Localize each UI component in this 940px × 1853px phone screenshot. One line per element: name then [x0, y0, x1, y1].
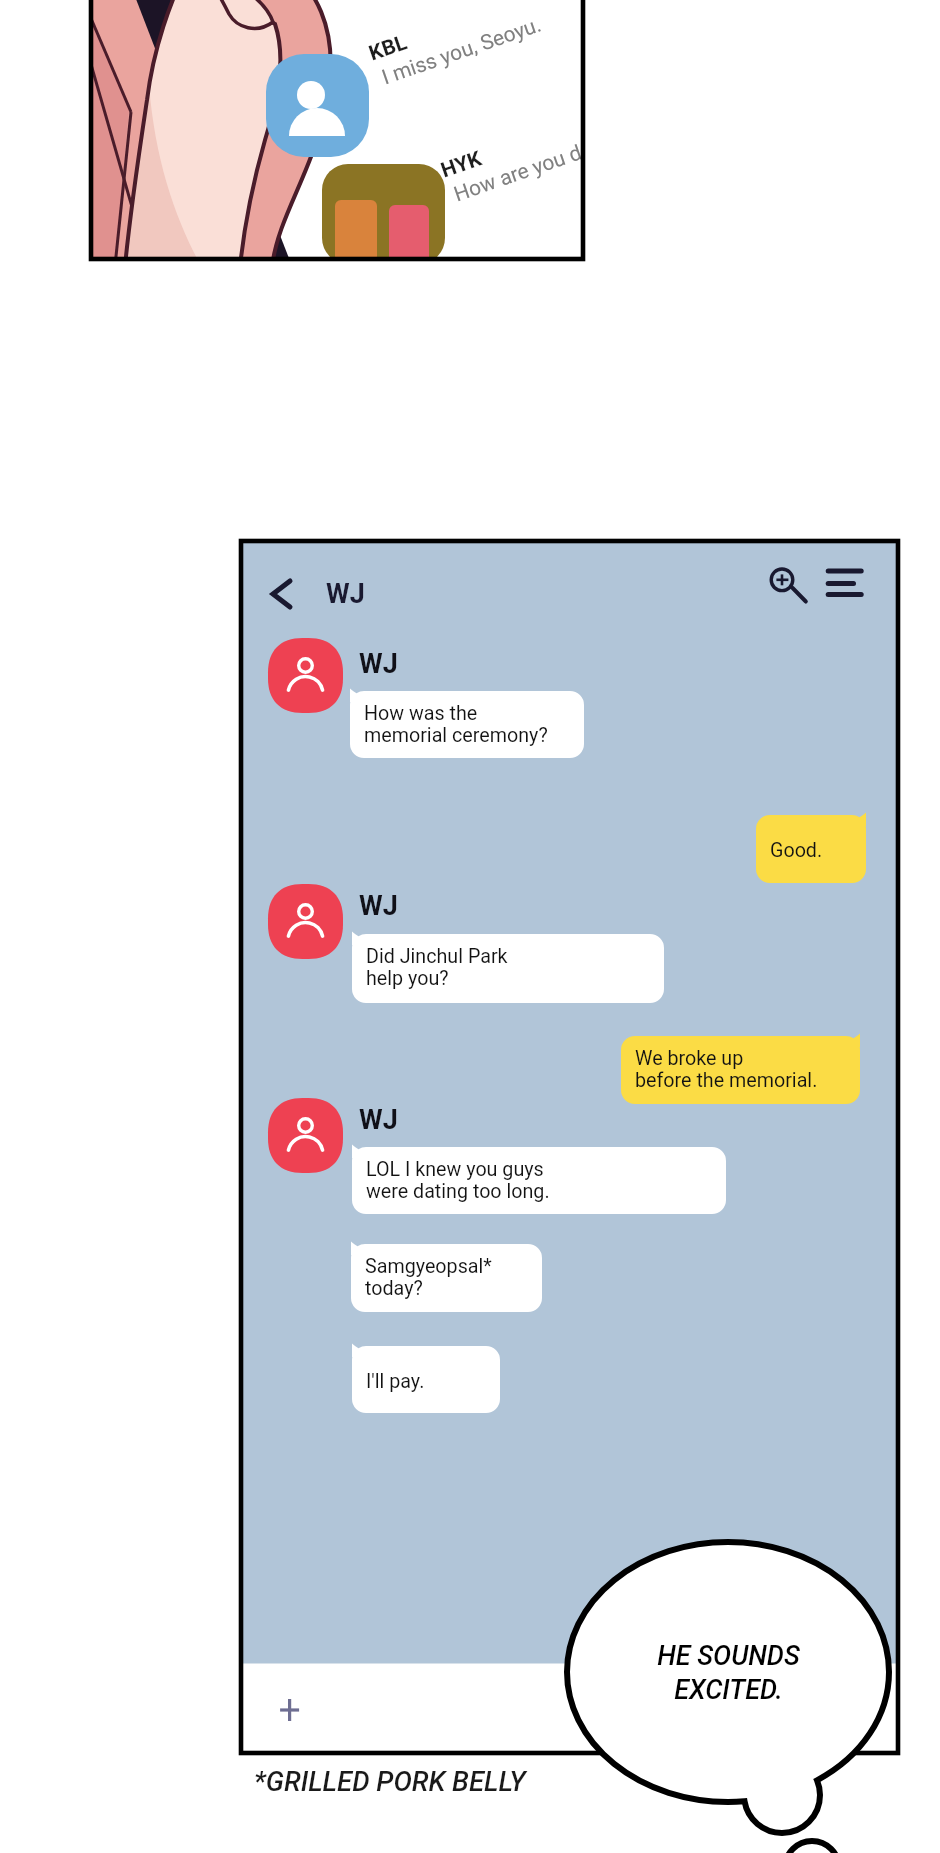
staticText: How are you do: [451, 136, 585, 207]
staticText: Good.: [770, 839, 823, 862]
button[interactable]: Profile photo of WJ: [268, 884, 343, 959]
staticText: We broke up before the memorial.: [635, 1047, 818, 1091]
staticText: WJ: [359, 648, 398, 680]
staticText: *GRILLED PORK BELLY: [254, 1765, 526, 1797]
staticText: I miss you, Seoyu.: [379, 12, 545, 90]
staticText: WJ: [359, 890, 398, 922]
button[interactable]: Menu: [824, 563, 864, 601]
button[interactable]: Profile photo of WJ: [268, 1098, 343, 1173]
staticText: Did Jinchul Park help you?: [366, 945, 508, 989]
button[interactable]: Profile photo of WJ: [268, 638, 343, 713]
staticText: HE SOUNDS: [657, 1640, 800, 1672]
button[interactable]: Back: [264, 572, 300, 616]
staticText: HYK: [438, 146, 485, 183]
staticText: Samgyeopsal* today?: [365, 1255, 492, 1299]
staticText: WJ: [326, 578, 365, 610]
staticText: KBL: [366, 30, 411, 66]
staticText: How was the memorial ceremony?: [364, 702, 548, 746]
staticText: EXCITED.: [674, 1674, 783, 1706]
button[interactable]: WJ: [326, 578, 365, 610]
staticText: LOL I knew you guys were dating too long…: [366, 1158, 550, 1202]
button[interactable]: Search: [766, 562, 810, 606]
staticText: I'll pay.: [366, 1370, 425, 1393]
staticText: WJ: [359, 1104, 398, 1136]
